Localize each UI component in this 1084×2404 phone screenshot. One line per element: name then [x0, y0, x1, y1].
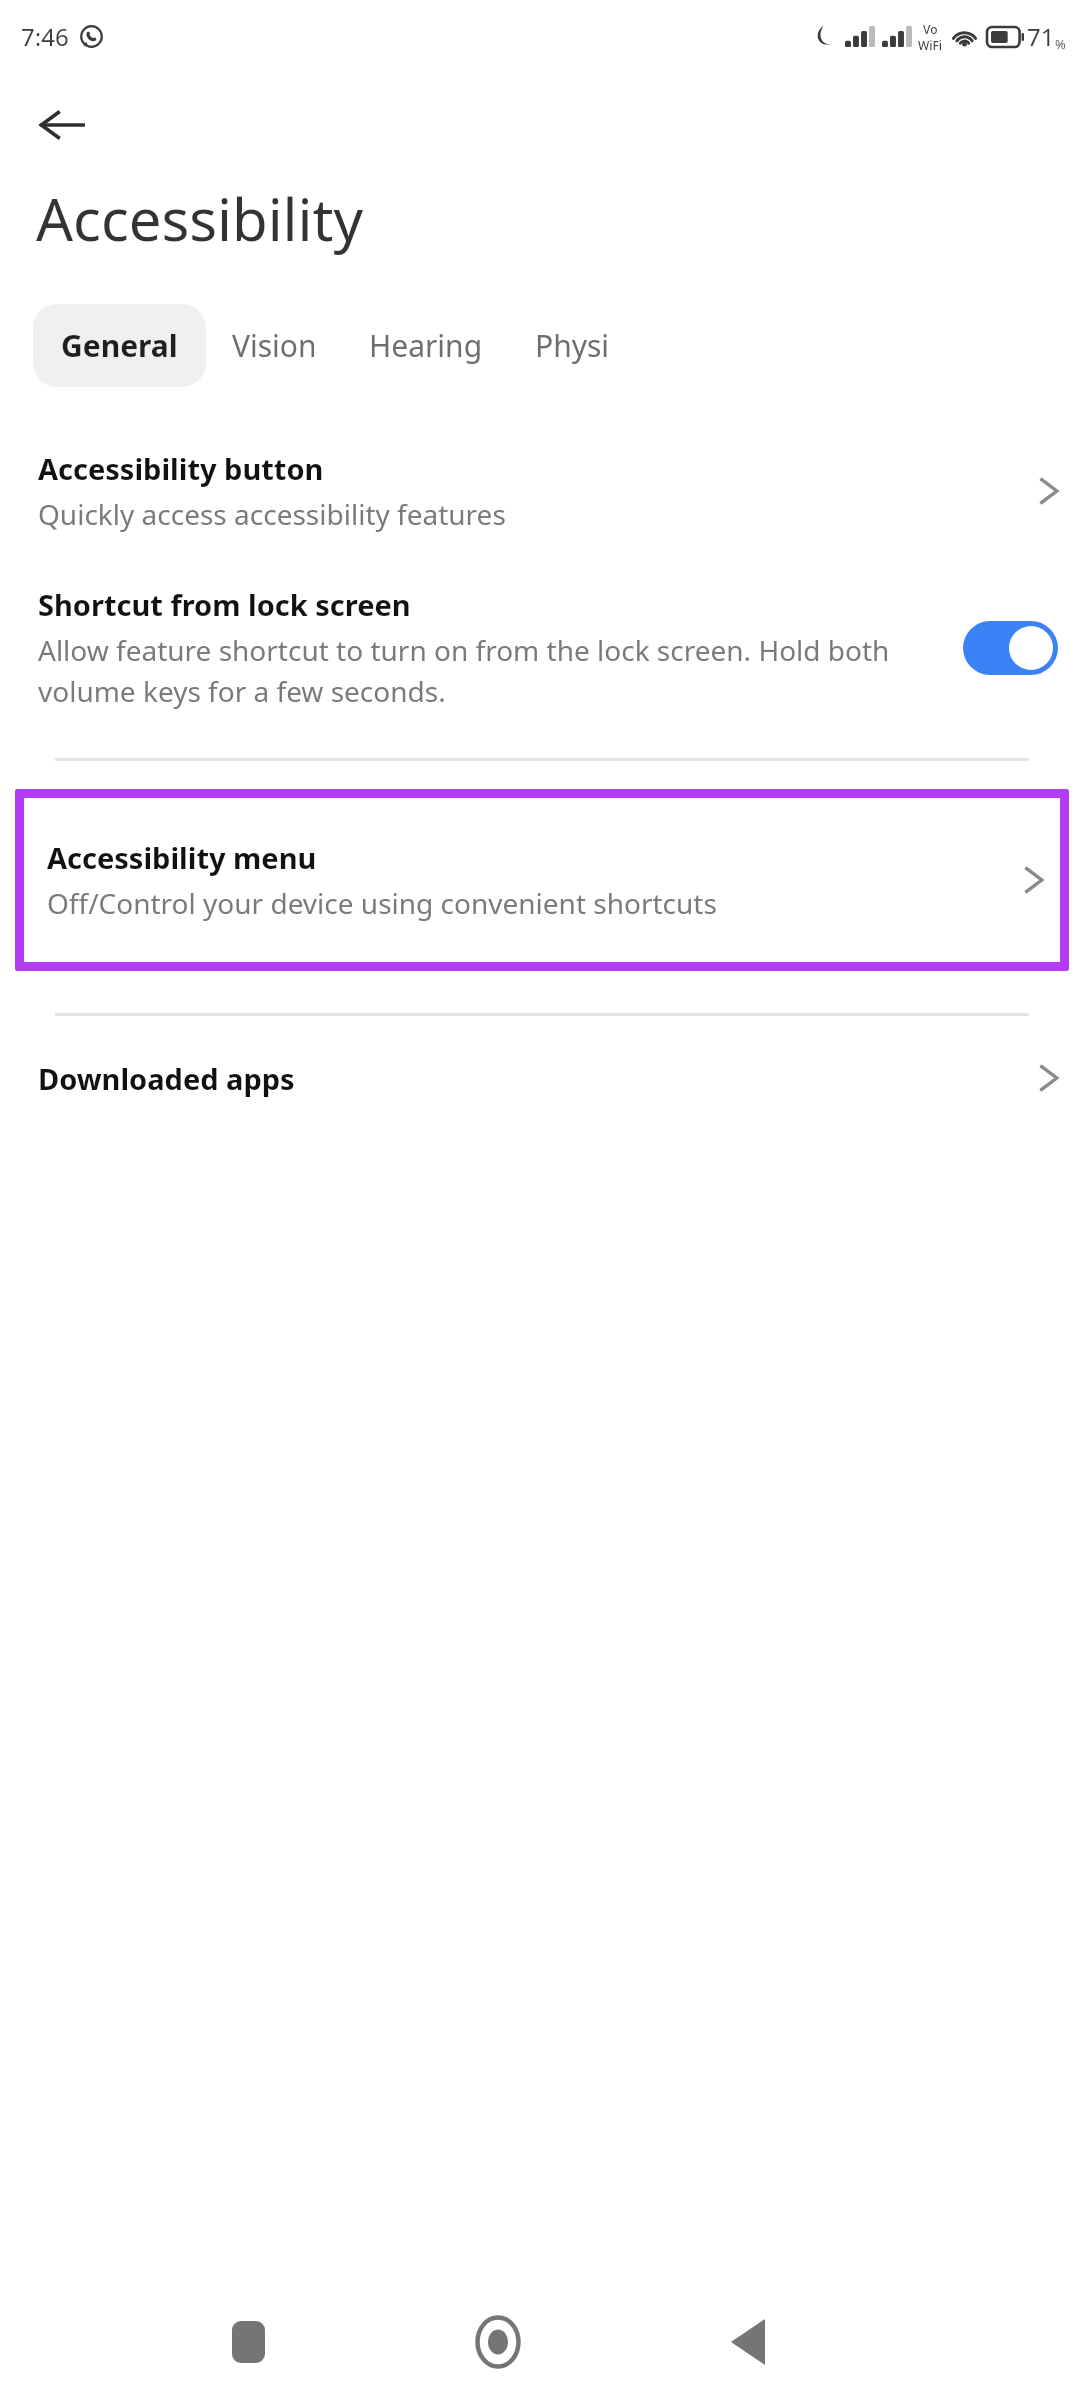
other: Accessibility button	[1036, 469, 1062, 513]
staticText: %	[1055, 35, 1066, 53]
button[interactable]: Shortcut from lock screen toggle	[963, 621, 1058, 675]
staticText: Accessibility button	[38, 449, 324, 488]
button[interactable]: Accessibility button	[0, 433, 1084, 549]
staticText: Hearing	[369, 325, 483, 366]
button[interactable]: Vision	[206, 304, 343, 387]
button[interactable]: Accessibility menu	[24, 798, 1060, 962]
button[interactable]: Shortcut from lock screen	[0, 585, 1084, 710]
other: Accessibility menu	[1021, 858, 1047, 902]
staticText: Accessibility	[36, 179, 364, 258]
button[interactable]: Back	[24, 87, 100, 163]
staticText: Vision	[232, 325, 317, 366]
staticText: Physi	[535, 325, 610, 366]
staticText: General	[61, 325, 178, 366]
button[interactable]: General	[33, 304, 206, 387]
staticText: Allow feature shortcut to turn on from t…	[38, 631, 947, 710]
staticText: Shortcut from lock screen	[38, 585, 411, 624]
staticText: 7:46	[21, 20, 69, 53]
staticText: Downloaded apps	[38, 1059, 295, 1098]
button[interactable]: Downloaded apps	[0, 1034, 1084, 1122]
staticText: Off/Control your device using convenient…	[47, 884, 717, 922]
other: Downloaded apps	[1036, 1056, 1062, 1100]
staticText: Accessibility menu	[47, 838, 317, 877]
staticText: WiFi	[918, 37, 943, 53]
button[interactable]: Home	[454, 2298, 542, 2386]
button[interactable]: Back	[704, 2298, 792, 2386]
staticText: 71	[1027, 20, 1055, 53]
button[interactable]: Recent apps	[204, 2298, 292, 2386]
button[interactable]: Physi	[509, 304, 636, 387]
staticText: Quickly access accessibility features	[38, 495, 506, 533]
staticText: Vo	[923, 21, 938, 37]
button[interactable]: Hearing	[343, 304, 509, 387]
